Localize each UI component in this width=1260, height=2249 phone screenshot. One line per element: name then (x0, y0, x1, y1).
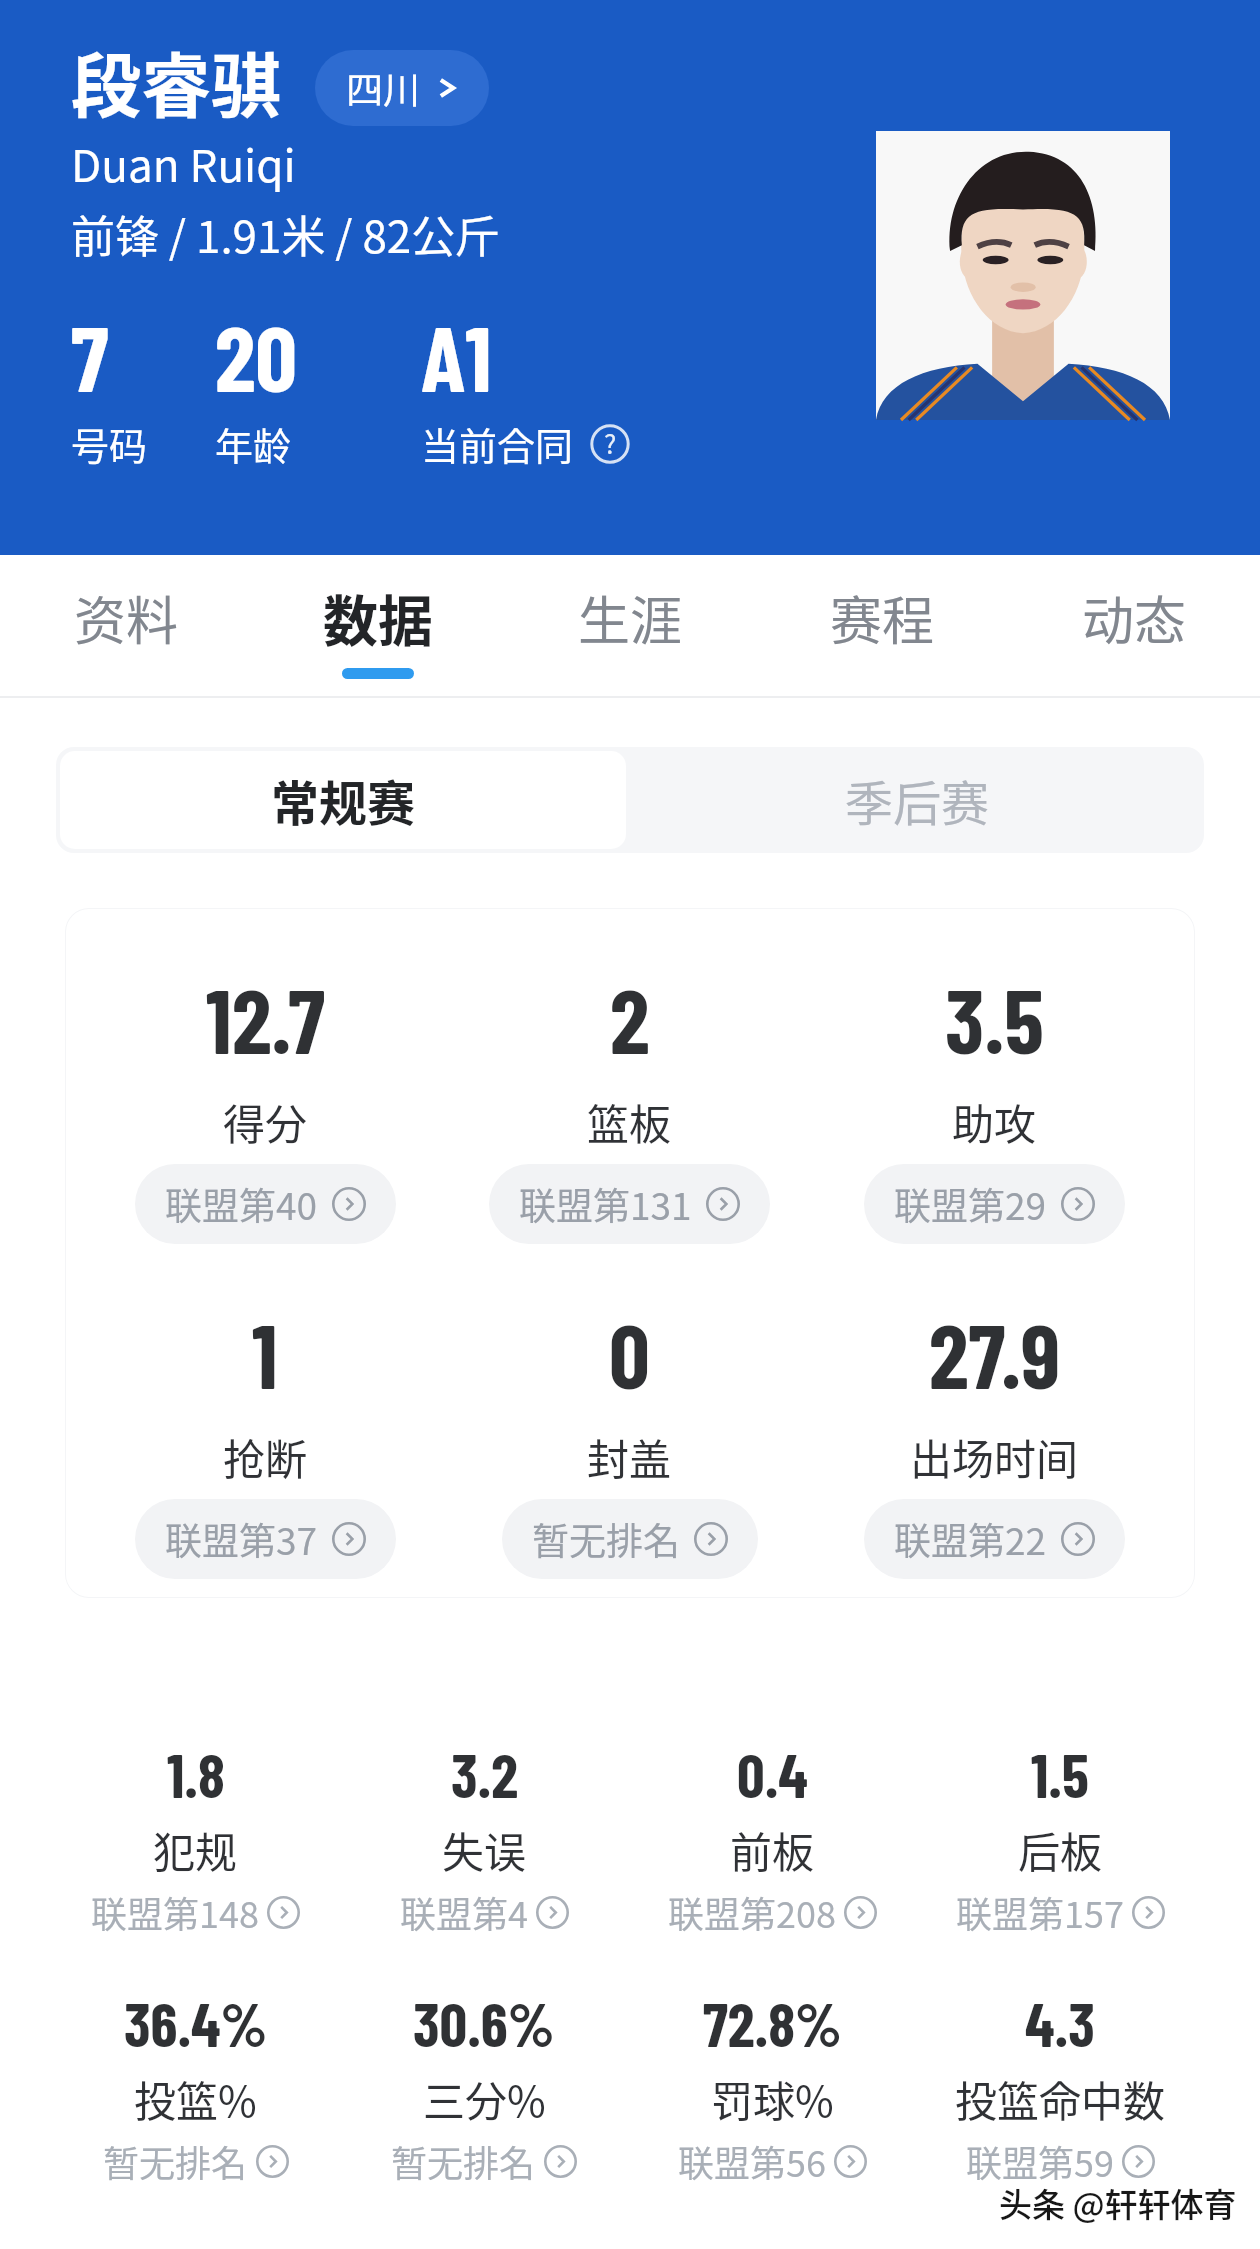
staticText: 号码 (71, 416, 148, 471)
staticText: 联盟第4 (400, 1886, 528, 1938)
staticText: 联盟第40 (165, 1177, 318, 1231)
staticText: 数据 (323, 577, 434, 657)
staticText: 1.8 (167, 1737, 225, 1810)
staticText: 当前合同 (421, 416, 574, 471)
staticText: 资料 (74, 580, 179, 655)
staticText: 2 (610, 964, 650, 1072)
button[interactable]: 资料 (0, 555, 252, 698)
button[interactable]: 联盟第37 (135, 1499, 396, 1579)
staticText: 72.8% (703, 1986, 842, 2059)
staticText: ? (604, 424, 617, 462)
button[interactable]: 动态 (1008, 555, 1260, 698)
staticText: 三分% (423, 2068, 546, 2129)
staticText: 1 (252, 1299, 278, 1407)
staticText: 36.4% (124, 1986, 268, 2059)
button[interactable]: 常规赛 (60, 751, 626, 849)
button[interactable]: 1.5 (916, 1737, 1204, 1938)
button[interactable]: 联盟第40 (135, 1164, 396, 1244)
staticText: 3.5 (945, 964, 1044, 1072)
staticText: 投篮命中数 (955, 2068, 1166, 2129)
staticText: 联盟第131 (519, 1177, 692, 1231)
staticText: 20 (215, 300, 297, 410)
staticText: 3.2 (451, 1737, 518, 1810)
staticText: 动态 (1082, 580, 1187, 655)
button[interactable]: 联盟第22 (864, 1499, 1125, 1579)
button[interactable]: 暂无排名 (502, 1499, 758, 1579)
button[interactable]: 3.2 (340, 1737, 628, 1938)
button[interactable]: 季后赛 (630, 747, 1204, 853)
staticText: 罚球% (711, 2068, 834, 2129)
staticText: 犯规 (153, 1819, 238, 1880)
staticText: 封盖 (587, 1426, 672, 1487)
staticText: 篮板 (587, 1091, 672, 1152)
staticText: 前锋 / 1.91米 / 82公斤 (71, 202, 500, 266)
staticText: 0.4 (737, 1737, 808, 1810)
staticText: 联盟第56 (678, 2135, 826, 2187)
staticText: 联盟第157 (956, 1886, 1124, 1938)
button[interactable]: 30.6% (340, 1986, 628, 2187)
staticText: 段睿骐 (71, 31, 281, 132)
staticText: 联盟第37 (165, 1512, 318, 1566)
staticText: 投篮% (134, 2068, 257, 2129)
staticText: 赛程 (830, 580, 935, 655)
staticText: 联盟第148 (91, 1886, 259, 1938)
button[interactable]: 数据 (252, 555, 504, 698)
button[interactable]: 联盟第131 (489, 1164, 770, 1244)
staticText: 30.6% (413, 1986, 555, 2059)
staticText: 失误 (442, 1819, 527, 1880)
button[interactable]: 0.4 (628, 1737, 916, 1938)
staticText: 暂无排名 (532, 1512, 680, 1566)
staticText: A1 (421, 300, 492, 410)
staticText: 4.3 (1025, 1986, 1095, 2059)
button[interactable]: 72.8% (628, 1986, 916, 2187)
staticText: 12.7 (206, 964, 325, 1072)
staticText: 联盟第22 (894, 1512, 1047, 1566)
staticText: 出场时间 (910, 1426, 1079, 1487)
staticText: 后板 (1018, 1819, 1103, 1880)
staticText: 常规赛 (271, 765, 416, 835)
staticText: 暂无排名 (391, 2135, 536, 2187)
staticText: Duan Ruiqi (71, 131, 296, 195)
staticText: 得分 (223, 1091, 308, 1152)
staticText: 27.9 (929, 1299, 1061, 1407)
staticText: 联盟第29 (894, 1177, 1047, 1231)
staticText: 头条 @轩轩体育 (999, 2179, 1237, 2227)
staticText: 年龄 (215, 416, 292, 471)
staticText: 四川 (346, 61, 420, 115)
button[interactable]: 赛程 (756, 555, 1008, 698)
staticText: 季后赛 (845, 765, 990, 835)
staticText: 联盟第208 (668, 1886, 836, 1938)
button[interactable]: 4.3 (916, 1986, 1204, 2187)
staticText: 7 (71, 300, 109, 410)
staticText: 前板 (730, 1819, 815, 1880)
button[interactable]: 联盟第29 (864, 1164, 1125, 1244)
button[interactable]: 四川 (315, 50, 489, 126)
staticText: 0 (609, 1299, 650, 1407)
button[interactable]: 1.8 (51, 1737, 340, 1938)
button[interactable]: Contract help (590, 424, 630, 464)
button[interactable]: 生涯 (504, 555, 756, 698)
staticText: 1.5 (1031, 1737, 1089, 1810)
staticText: 生涯 (578, 580, 683, 655)
staticText: 联盟第59 (966, 2135, 1114, 2187)
staticText: 助攻 (952, 1091, 1037, 1152)
staticText: 抢断 (223, 1426, 308, 1487)
button[interactable]: 36.4% (51, 1986, 340, 2187)
staticText: 暂无排名 (103, 2135, 248, 2187)
